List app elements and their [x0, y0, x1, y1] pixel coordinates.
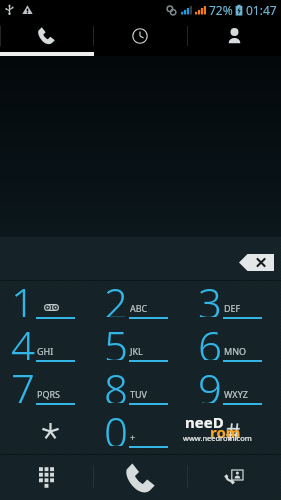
staticText: 9	[198, 360, 222, 403]
staticText: 5	[104, 317, 128, 360]
button[interactable]: Contacts	[187, 454, 281, 500]
button[interactable]: Contacts	[187, 19, 281, 52]
button[interactable]: 6	[187, 324, 281, 367]
staticText: 3	[198, 274, 222, 317]
staticText: 4	[11, 317, 35, 360]
button[interactable]: 0	[93, 410, 187, 453]
staticText: 8	[104, 360, 128, 403]
button[interactable]: Call log	[93, 19, 187, 52]
staticText: PQRS	[37, 388, 61, 400]
button[interactable]	[0, 410, 93, 453]
staticText: www.needrom.com	[183, 433, 252, 443]
staticText: 7	[11, 360, 35, 403]
staticText: DEF	[224, 302, 241, 314]
staticText: JKL	[130, 345, 143, 357]
staticText: 01:47	[246, 2, 277, 18]
button[interactable]: 9	[187, 367, 281, 410]
button[interactable]: Dialer	[0, 19, 93, 52]
staticText: 72%	[209, 2, 233, 18]
staticText: TUV	[130, 388, 147, 400]
staticText: GHI	[37, 345, 54, 357]
button[interactable]: 7	[0, 367, 93, 410]
staticText: +	[130, 431, 136, 443]
button[interactable]: 8	[93, 367, 187, 410]
button[interactable]: 5	[93, 324, 187, 367]
button[interactable]	[187, 410, 281, 453]
button[interactable]: 2	[93, 281, 187, 324]
staticText: neeD	[185, 412, 224, 432]
button[interactable]: 3	[187, 281, 281, 324]
staticText: WXYZ	[224, 388, 248, 400]
staticText: 6	[198, 317, 222, 360]
staticText: 0	[104, 403, 128, 446]
staticText: 2	[104, 274, 128, 317]
staticText: MNO	[224, 345, 247, 357]
staticText: 1	[11, 274, 35, 317]
button[interactable]: 1	[0, 281, 93, 324]
button[interactable]: Delete	[239, 254, 274, 271]
button[interactable]: Dialpad	[0, 454, 93, 500]
staticText: rom	[210, 422, 241, 442]
staticText: ABC	[130, 302, 148, 314]
button[interactable]: 4	[0, 324, 93, 367]
button[interactable]: Call	[93, 454, 187, 500]
